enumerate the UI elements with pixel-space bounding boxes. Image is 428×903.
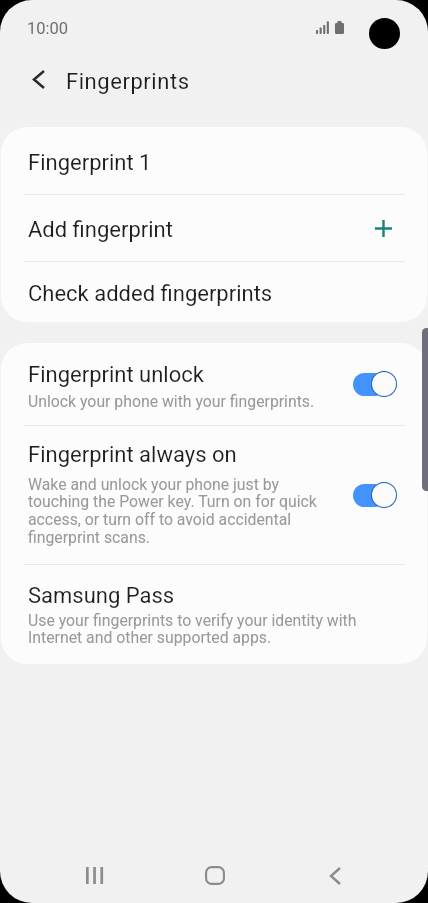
button[interactable]: Fingerprint always on bbox=[1, 426, 427, 564]
button[interactable]: Check added fingerprints bbox=[1, 262, 427, 322]
button[interactable]: Samsung Pass bbox=[1, 565, 427, 664]
button[interactable]: Recent apps bbox=[59, 848, 131, 903]
button[interactable] bbox=[353, 480, 397, 510]
button[interactable] bbox=[353, 369, 397, 399]
button[interactable]: Back bbox=[299, 848, 371, 903]
staticText: Unlock your phone with your fingerprints… bbox=[28, 392, 315, 411]
staticText: Wake and unlock your phone just by touch… bbox=[28, 475, 328, 547]
staticText: Samsung Pass bbox=[28, 583, 175, 609]
button[interactable]: Fingerprint unlock bbox=[1, 343, 427, 425]
button[interactable]: Add fingerprint bbox=[1, 195, 427, 261]
staticText: Check added fingerprints bbox=[28, 281, 273, 307]
staticText: Fingerprints bbox=[66, 69, 190, 95]
staticText: Fingerprint always on bbox=[28, 442, 237, 468]
staticText: Add fingerprint bbox=[28, 217, 173, 243]
staticText: Fingerprint unlock bbox=[28, 362, 204, 388]
button[interactable]: Fingerprint 1 bbox=[1, 127, 427, 194]
staticText: 10:00 bbox=[27, 19, 69, 38]
button[interactable]: Add fingerprint bbox=[361, 206, 405, 250]
staticText: Use your fingerprints to verify your ide… bbox=[28, 611, 368, 647]
staticText: Fingerprint 1 bbox=[28, 150, 152, 176]
button[interactable]: Home bbox=[179, 848, 251, 903]
button[interactable]: Navigate up bbox=[15, 55, 63, 103]
